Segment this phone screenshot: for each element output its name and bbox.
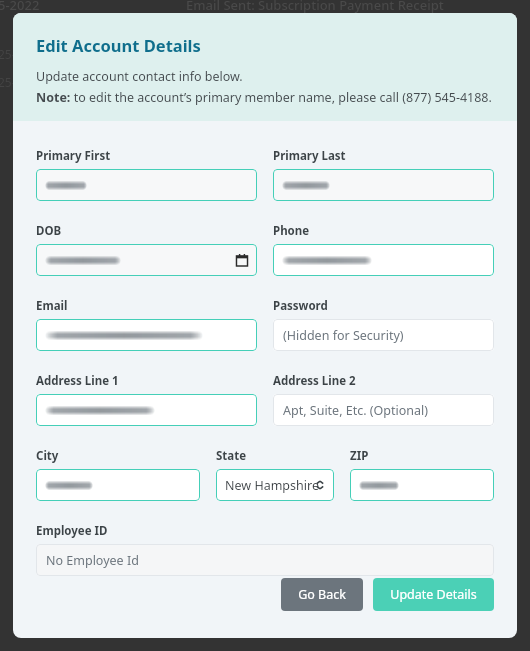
staticText: City xyxy=(36,448,59,464)
staticText: Password xyxy=(273,298,328,314)
staticText: Primary Last xyxy=(273,148,346,164)
button[interactable] xyxy=(273,169,494,201)
button[interactable]: Pick date xyxy=(36,244,257,276)
staticText: Update Details xyxy=(390,586,477,603)
staticText: Email Sent: Subscription Payment Receipt xyxy=(186,0,444,14)
staticText: Address Line 2 xyxy=(273,373,356,389)
staticText: Email xyxy=(36,298,68,314)
staticText: 5-2022 xyxy=(0,0,40,14)
button[interactable] xyxy=(36,169,257,201)
staticText: Primary First xyxy=(36,148,111,164)
staticText: New Hampshire xyxy=(225,477,319,494)
button[interactable] xyxy=(36,469,200,501)
staticText: ZIP xyxy=(350,448,369,464)
button[interactable] xyxy=(350,469,494,501)
staticText: State xyxy=(216,448,247,464)
button[interactable]: New Hampshire xyxy=(216,469,334,501)
other: Select state xyxy=(315,478,325,492)
button[interactable]: Go Back xyxy=(281,578,363,611)
staticText: Phone xyxy=(273,223,310,239)
staticText: No Employee Id xyxy=(46,552,139,569)
staticText: Go Back xyxy=(298,586,346,603)
staticText: Edit Account Details xyxy=(36,34,201,56)
button[interactable] xyxy=(36,319,257,351)
button[interactable]: (Hidden for Security) xyxy=(273,319,494,351)
staticText: Address Line 1 xyxy=(36,373,119,389)
button[interactable] xyxy=(36,394,257,426)
staticText: Note: to edit the account’s primary memb… xyxy=(36,89,492,106)
button[interactable]: Update Details xyxy=(373,578,494,611)
staticText: Employee ID xyxy=(36,523,108,539)
staticText: (Hidden for Security) xyxy=(283,327,404,344)
button[interactable] xyxy=(273,244,494,276)
staticText: Update account contact info below. xyxy=(36,68,243,85)
staticText: DOB xyxy=(36,223,62,239)
button[interactable]: Apt, Suite, Etc. (Optional) xyxy=(273,394,494,426)
staticText: Apt, Suite, Etc. (Optional) xyxy=(283,402,429,419)
staticText: 25- xyxy=(0,46,16,62)
other: Pick date xyxy=(236,254,248,266)
staticText: 25- xyxy=(0,74,16,90)
